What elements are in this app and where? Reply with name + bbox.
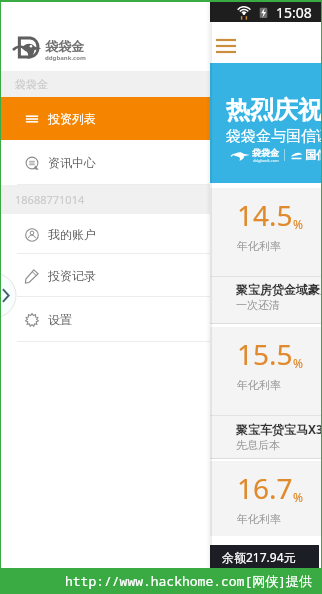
staticText: ddgbank.com: [45, 54, 86, 62]
button[interactable]: 设置: [1, 297, 210, 342]
staticText: 袋袋金: [252, 147, 279, 158]
staticText: 袋袋金: [15, 77, 48, 91]
staticText: ddgbank.com: [253, 158, 279, 163]
staticText: 余额217.94元: [222, 549, 296, 565]
staticText: 袋袋金与国信证券: [226, 127, 321, 146]
staticText: 16.7: [237, 469, 293, 507]
button[interactable]: 余额217.94元: [210, 545, 319, 568]
button[interactable]: 资讯中心: [1, 140, 210, 185]
staticText: 投资记录: [48, 268, 96, 283]
staticText: 年化利率: [237, 512, 281, 526]
staticText: 14.5: [237, 196, 293, 234]
staticText: 15.5: [237, 335, 293, 373]
staticText: %: [293, 489, 303, 505]
button[interactable]: 投资记录: [1, 254, 210, 297]
staticText: 热烈庆祝: [226, 95, 321, 125]
button[interactable]: 我的账户: [1, 214, 210, 254]
staticText: 年化利率: [237, 378, 281, 392]
staticText: 年化利率: [237, 239, 281, 253]
button[interactable]: 投资列表: [1, 97, 210, 140]
staticText: 设置: [48, 312, 72, 327]
staticText: 投资列表: [48, 111, 96, 126]
staticText: 我的账户: [48, 227, 96, 242]
staticText: %: [293, 216, 303, 232]
staticText: 先息后本: [236, 438, 280, 452]
button[interactable]: Open navigation menu: [211, 30, 241, 60]
staticText: 18688771014: [15, 192, 85, 207]
staticText: %: [293, 355, 303, 371]
button[interactable]: Expand panel: [1, 273, 16, 318]
staticText: 聚宝房贷金域豪庭贷: [236, 282, 321, 297]
staticText: 资讯中心: [48, 155, 96, 170]
staticText: 一次还清: [236, 298, 280, 312]
staticText: 袋袋金: [45, 38, 84, 54]
staticText: http://www.hackhome.com[网侠]提供: [65, 572, 313, 590]
staticText: 国信证券: [305, 148, 321, 162]
staticText: 聚宝车贷宝马X3抵押: [236, 421, 321, 437]
staticText: 15:08: [276, 3, 312, 22]
